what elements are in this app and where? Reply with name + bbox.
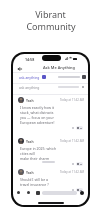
staticText: Yash [26, 139, 34, 143]
button[interactable]: ask anything [19, 82, 84, 92]
button[interactable]: Yash [18, 97, 84, 130]
button[interactable]: ask-anything [19, 72, 86, 82]
button[interactable]: Yash [18, 169, 84, 192]
button[interactable]: Send [80, 191, 84, 195]
staticText: European adventure! [20, 120, 55, 125]
staticText: ask anything [19, 85, 40, 90]
button[interactable]: Camera [36, 191, 40, 195]
staticText: I know exactly how it [20, 105, 55, 110]
button[interactable]: Yash [18, 138, 84, 166]
staticText: Today at 11:42 AM [60, 139, 84, 143]
button[interactable]: React [77, 163, 82, 165]
button[interactable]: React [77, 127, 82, 129]
staticText: Yash [26, 170, 34, 174]
staticText: make their charm [20, 156, 50, 161]
staticText: Should I still be a [20, 177, 48, 182]
staticText: Community [26, 20, 76, 32]
staticText: Vibrant [35, 8, 66, 20]
staticText: Ask Me Anything [43, 65, 76, 70]
button[interactable]: Add [17, 191, 20, 194]
staticText: Europe in 2025: which [20, 146, 57, 151]
staticText: you — focus on your [20, 115, 54, 120]
button[interactable]: React [77, 189, 82, 191]
staticText: 14:58 [25, 57, 35, 62]
staticText: ask-anything [19, 75, 40, 79]
button[interactable]: Emoji [27, 191, 30, 194]
staticText: cities will [20, 151, 35, 156]
staticText: stuck, what distracts [20, 110, 54, 115]
staticText: Yash [26, 98, 34, 102]
staticText: Today at 11:42 AM [60, 98, 84, 102]
staticText: Today at 11:42 AM [60, 170, 84, 174]
staticText: travel insurance ? [20, 182, 49, 187]
button[interactable]: Back [16, 65, 23, 72]
button[interactable] [42, 191, 77, 195]
